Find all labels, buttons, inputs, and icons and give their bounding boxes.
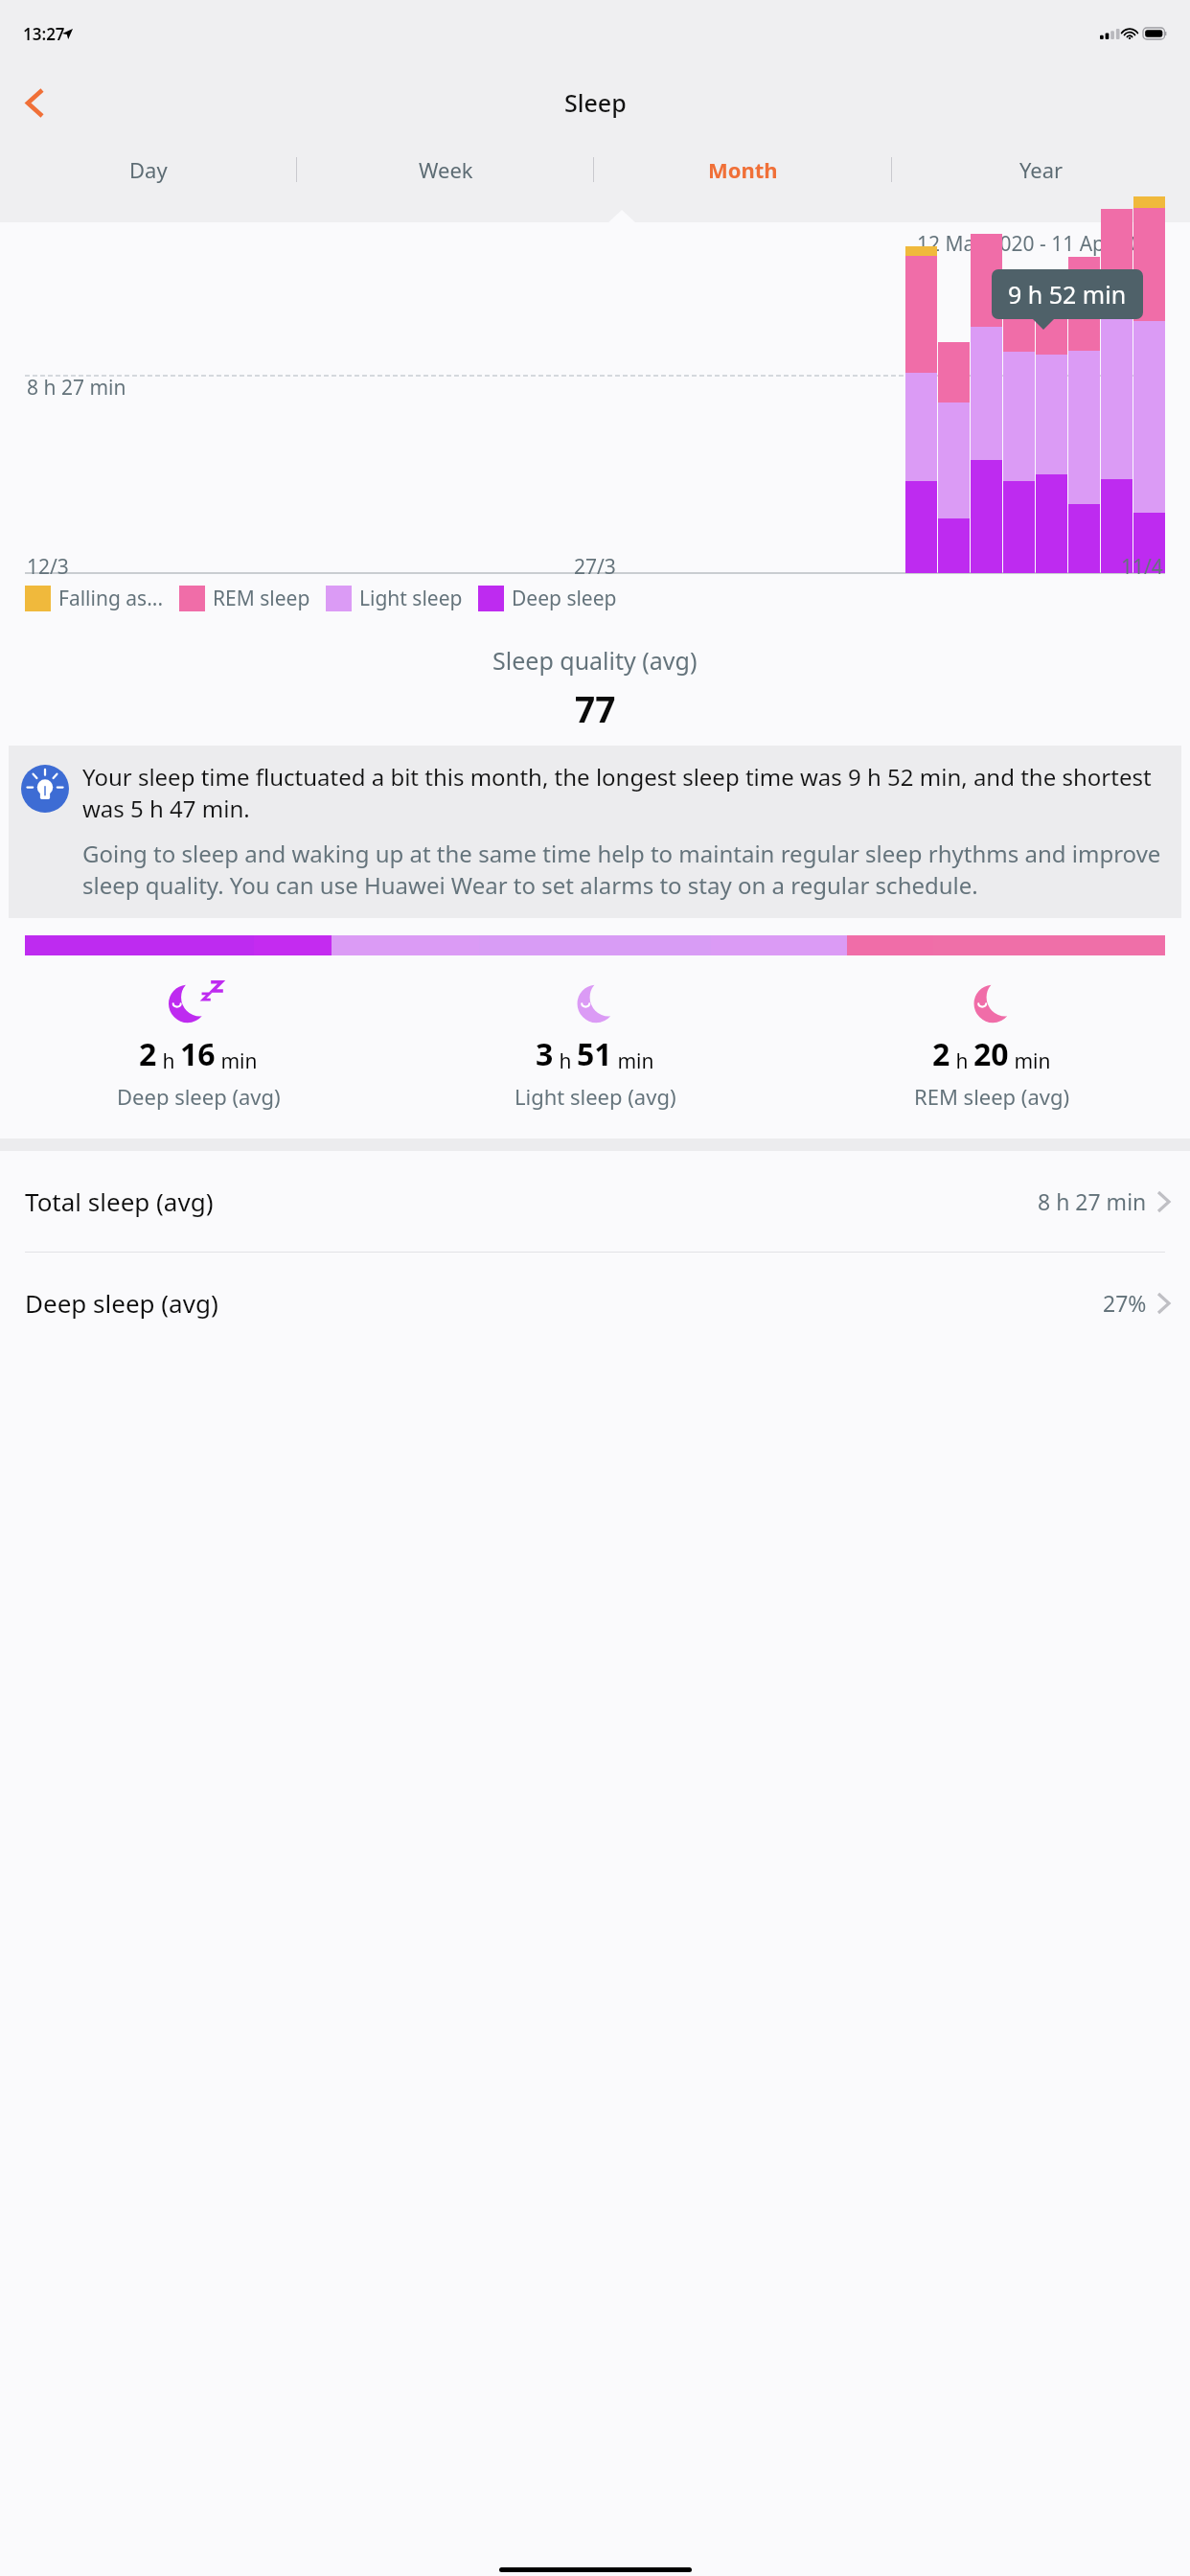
staticText: Deep sleep (avg) [25,1286,1103,1320]
staticText: REM sleep (avg) [914,1082,1070,1111]
staticText: h [554,1047,577,1075]
button[interactable]: Back [8,76,61,129]
staticText: Total sleep (avg) [25,1184,1038,1218]
button[interactable]: Week [297,141,594,198]
button[interactable]: Month [594,141,892,198]
staticText: min [612,1047,654,1075]
button[interactable]: Deep sleep (avg) [0,1253,1190,1353]
button[interactable]: Year [892,141,1190,198]
staticText: 12/3 [27,553,69,581]
staticText: 3 [536,1033,554,1075]
staticText: 2 [932,1033,950,1075]
staticText: 9 h 52 min [1008,278,1127,310]
staticText: Your sleep time fluctuated a bit this mo… [82,761,1170,824]
staticText: 8 h 27 min [27,374,126,402]
staticText: 77 [575,684,616,732]
staticText: 8 h 27 min [1038,1186,1147,1216]
staticText: 51 [577,1033,612,1075]
staticText: Sleep [564,86,627,119]
staticText: 11/4 [1121,553,1163,581]
staticText: Sleep quality (avg) [492,644,698,677]
staticText: h [157,1047,180,1075]
staticText: min [216,1047,258,1075]
staticText: Year [1019,155,1064,184]
staticText: Month [708,155,778,184]
staticText: Going to sleep and waking up at the same… [82,838,1170,901]
staticText: 20 [973,1033,1009,1075]
staticText: 13:27 [23,23,65,45]
staticText: Deep sleep [512,585,617,612]
staticText: Week [419,155,473,184]
staticText: 2 [139,1033,157,1075]
staticText: Light sleep (avg) [515,1082,676,1111]
staticText: h [950,1047,973,1075]
staticText: Deep sleep (avg) [117,1082,281,1111]
staticText: Day [129,155,168,184]
staticText: min [1009,1047,1051,1075]
staticText: Falling as... [58,585,164,612]
staticText: 12 Mar 2020 - 11 Apr 2020 [917,230,1165,258]
button[interactable]: Total sleep (avg) [0,1151,1190,1253]
button[interactable]: Day [0,141,297,198]
staticText: 16 [180,1033,216,1075]
staticText: REM sleep [213,585,310,612]
staticText: 27/3 [574,553,616,581]
staticText: 27% [1103,1288,1147,1318]
staticText: Light sleep [359,585,463,612]
